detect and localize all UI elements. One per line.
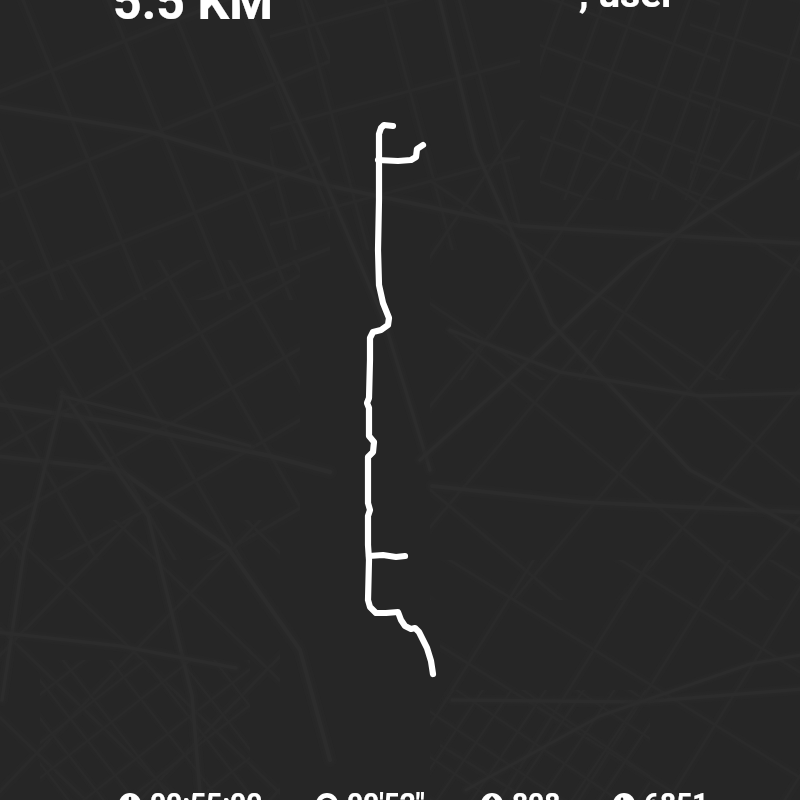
button[interactable]: Duration 00:55:00: [119, 787, 263, 800]
staticText: 5.5 KM: [113, 0, 273, 32]
button[interactable]: Calories 808: [481, 787, 561, 800]
button[interactable]: Steps 6851: [613, 787, 709, 800]
button[interactable]: 5.5 KM: [113, 0, 273, 32]
button[interactable]: , user: [579, 0, 676, 17]
staticText: 6851: [644, 787, 709, 800]
staticText: 808: [512, 787, 561, 800]
staticText: 00'52": [347, 787, 425, 800]
button[interactable]: Average pace 00'52": [316, 787, 425, 800]
staticText: , user: [579, 0, 676, 17]
staticText: 00:55:00: [150, 787, 263, 800]
